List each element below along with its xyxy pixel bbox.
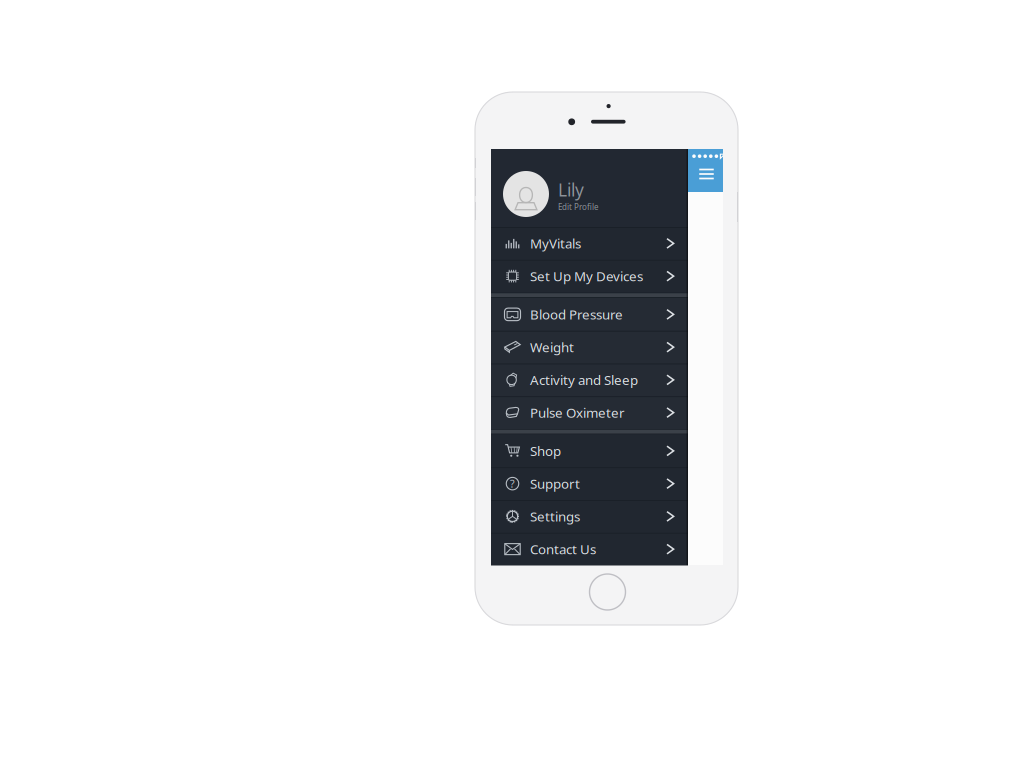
button[interactable]: MyVitals — [491, 227, 688, 260]
button[interactable]: Activity and Sleep — [491, 363, 688, 396]
staticText: Activity and Sleep — [530, 371, 638, 389]
staticText: Blood Pressure — [530, 305, 623, 323]
button[interactable]: Set Up My Devices — [491, 260, 688, 293]
staticText: Support — [530, 475, 580, 492]
staticText: Contact Us — [530, 540, 596, 558]
button[interactable]: Lily — [491, 149, 688, 227]
button[interactable]: Shop — [491, 434, 688, 467]
staticText: Lily — [558, 178, 584, 201]
button[interactable]: ? — [491, 467, 688, 500]
staticText: MyVitals — [530, 234, 581, 252]
staticText: Edit Profile — [558, 202, 599, 212]
staticText: ? — [510, 476, 515, 491]
staticText: Set Up My Devices — [530, 267, 643, 285]
button[interactable]: Menu — [696, 166, 716, 182]
button[interactable]: Weight — [491, 331, 688, 364]
staticText: Pulse Oximeter — [530, 404, 625, 421]
staticText: Settings — [530, 507, 580, 525]
staticText: Shop — [530, 442, 561, 460]
staticText: Weight — [530, 338, 574, 356]
button[interactable]: Contact Us — [491, 533, 688, 566]
button[interactable]: Settings — [491, 500, 688, 533]
button[interactable]: Blood Pressure — [491, 298, 688, 331]
button[interactable]: Pulse Oximeter — [491, 396, 688, 429]
